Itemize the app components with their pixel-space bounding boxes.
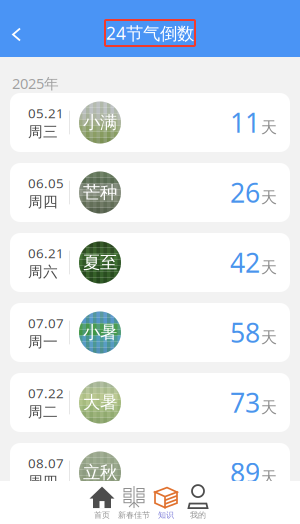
staticText: 小满 (83, 112, 117, 133)
staticText: 新春佳节 (118, 510, 150, 520)
button[interactable]: 知识 (150, 481, 182, 524)
staticText: 周二 (28, 403, 58, 421)
button[interactable]: 07.22 (10, 373, 290, 432)
button[interactable]: 08.07 (10, 443, 290, 502)
staticText: 周四 (28, 193, 58, 211)
staticText: 天 (261, 328, 277, 347)
button[interactable]: 06.21 (10, 233, 290, 292)
staticText: 89 (230, 455, 260, 490)
staticText: 24节气倒数 (106, 21, 194, 44)
staticText: 天 (261, 398, 277, 417)
staticText: 我的 (190, 510, 206, 520)
staticText: 天 (261, 258, 277, 277)
button[interactable]: 05.21 (10, 93, 290, 152)
button[interactable]: 我的 (182, 481, 214, 524)
staticText: 11 (230, 105, 260, 140)
staticText: 知识 (158, 510, 174, 520)
staticText: 06.21 (28, 244, 64, 262)
staticText: 周六 (28, 263, 58, 281)
button[interactable]: 06.05 (10, 163, 290, 222)
button[interactable]: Back (4, 8, 34, 48)
staticText: 2025年 (12, 73, 59, 93)
staticText: 07.07 (28, 314, 64, 332)
staticText: 大暑 (83, 392, 117, 413)
staticText: 07.22 (28, 384, 64, 402)
button[interactable]: 新春佳节 (118, 481, 150, 524)
button[interactable]: 首页 (86, 481, 118, 524)
staticText: 08.07 (28, 454, 64, 472)
staticText: 小暑 (83, 322, 117, 343)
staticText: 首页 (94, 510, 110, 520)
staticText: 周四 (28, 473, 58, 491)
staticText: 周三 (28, 123, 58, 141)
staticText: 26 (230, 175, 260, 210)
staticText: 周一 (28, 333, 58, 351)
staticText: 73 (230, 385, 260, 420)
staticText: 芒种 (83, 182, 117, 203)
staticText: 夏至 (83, 252, 117, 273)
staticText: 立秋 (83, 462, 117, 483)
staticText: 06.05 (28, 174, 64, 192)
staticText: 天 (261, 188, 277, 207)
button[interactable]: 07.07 (10, 303, 290, 362)
staticText: 天 (261, 468, 277, 487)
staticText: 42 (230, 245, 260, 280)
staticText: 58 (230, 315, 260, 350)
staticText: 05.21 (28, 104, 64, 122)
staticText: 天 (261, 118, 277, 137)
